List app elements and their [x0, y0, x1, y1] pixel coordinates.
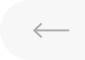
button[interactable]: Back: [0, 0, 85, 60]
